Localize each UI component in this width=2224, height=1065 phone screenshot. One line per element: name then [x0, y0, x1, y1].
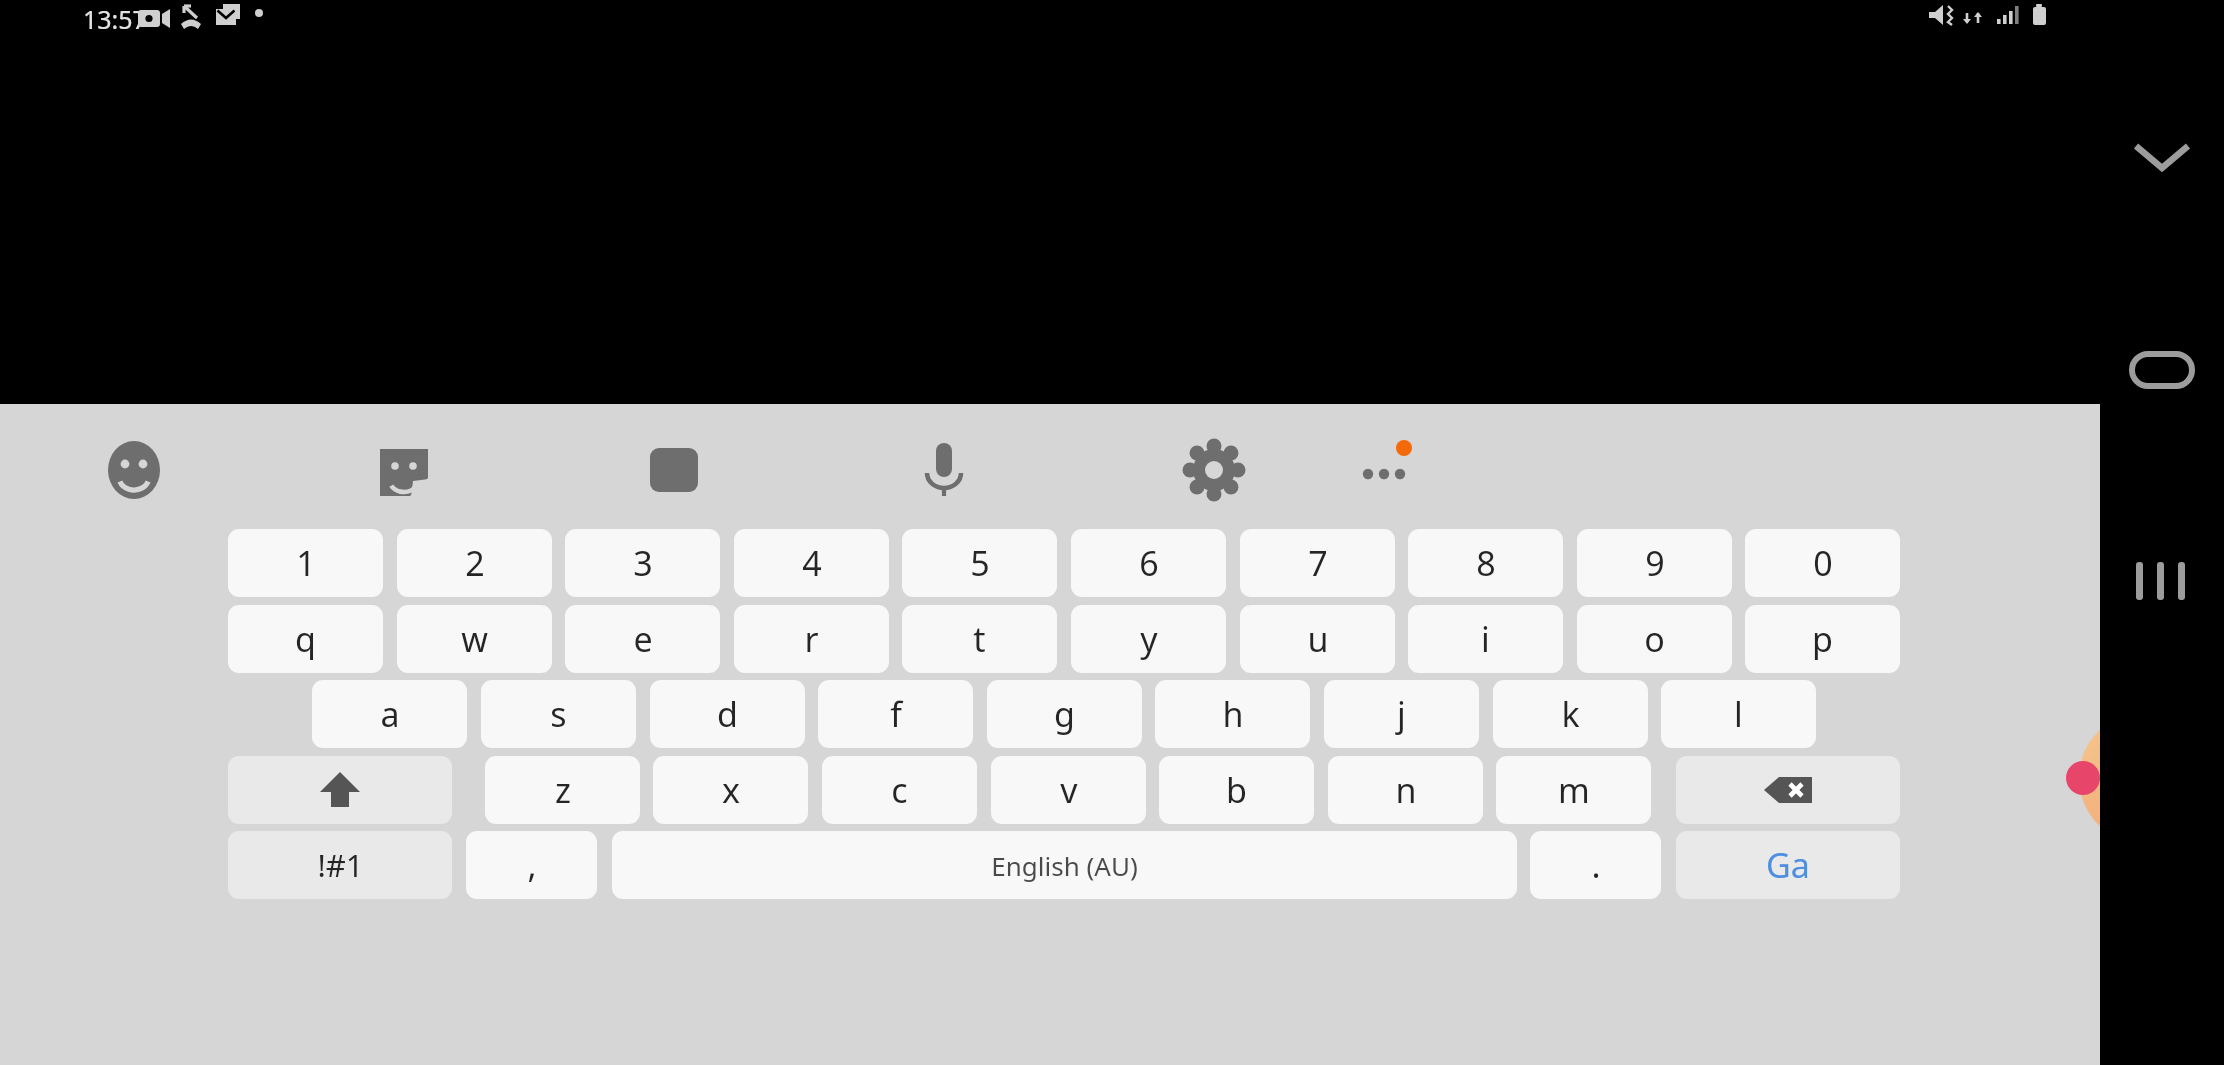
button[interactable]: GIF — [640, 436, 708, 504]
button[interactable]: s — [481, 680, 636, 748]
staticText: 1 — [296, 540, 316, 586]
button[interactable]: u — [1240, 605, 1395, 673]
staticText: 3 — [633, 540, 653, 586]
button[interactable]: 6 — [1071, 529, 1226, 597]
button[interactable]: q — [228, 605, 383, 673]
staticText: English (AU) — [991, 848, 1138, 883]
staticText: , — [527, 842, 537, 888]
button[interactable]: p — [1745, 605, 1900, 673]
button[interactable]: 0 — [1745, 529, 1900, 597]
staticText: r — [804, 616, 819, 662]
staticText: m — [1558, 767, 1590, 813]
button[interactable]: Keyboard settings — [1180, 436, 1248, 504]
button[interactable]: 9 — [1577, 529, 1732, 597]
staticText: z — [555, 767, 571, 813]
button[interactable]: 2 — [397, 529, 552, 597]
button[interactable]: English (AU) — [612, 831, 1517, 899]
staticText: 9 — [1645, 540, 1665, 586]
button[interactable]: . — [1530, 831, 1661, 899]
button[interactable]: z — [485, 756, 640, 824]
staticText: y — [1140, 616, 1158, 662]
button[interactable]: Backspace — [1676, 756, 1900, 824]
button[interactable]: v — [991, 756, 1146, 824]
button[interactable]: 7 — [1240, 529, 1395, 597]
button[interactable]: Emoji — [100, 436, 168, 504]
button[interactable]: m — [1496, 756, 1651, 824]
button[interactable]: Recent apps — [2122, 540, 2202, 620]
staticText: 6 — [1139, 540, 1159, 586]
button[interactable]: l — [1661, 680, 1816, 748]
button[interactable]: Voice input — [910, 436, 978, 504]
button[interactable]: b — [1159, 756, 1314, 824]
button[interactable]: h — [1155, 680, 1310, 748]
button[interactable]: Stickers — [370, 436, 438, 504]
button[interactable]: a — [312, 680, 467, 748]
staticText: 7 — [1308, 540, 1328, 586]
button[interactable]: Hide keyboard — [2122, 118, 2202, 198]
staticText: c — [891, 767, 908, 813]
button[interactable]: y — [1071, 605, 1226, 673]
staticText: a — [380, 691, 400, 737]
staticText: t — [973, 616, 986, 662]
staticText: w — [461, 616, 488, 662]
button[interactable]: , — [466, 831, 597, 899]
button[interactable]: i — [1408, 605, 1563, 673]
staticText: p — [1812, 616, 1833, 662]
staticText: k — [1561, 691, 1580, 737]
button[interactable]: More options — [1350, 436, 1418, 504]
button[interactable]: 1 — [228, 529, 383, 597]
staticText: b — [1226, 767, 1247, 813]
staticText: 2 — [465, 540, 485, 586]
button[interactable]: c — [822, 756, 977, 824]
staticText: q — [295, 616, 316, 662]
staticText: j — [1397, 691, 1406, 737]
staticText: d — [717, 691, 738, 737]
staticText: o — [1644, 616, 1665, 662]
staticText: 5 — [970, 540, 990, 586]
button[interactable]: 5 — [902, 529, 1057, 597]
staticText: 4 — [802, 540, 822, 586]
button[interactable]: j — [1324, 680, 1479, 748]
staticText: x — [722, 767, 740, 813]
staticText: h — [1222, 691, 1244, 737]
button[interactable]: e — [565, 605, 720, 673]
button[interactable]: 8 — [1408, 529, 1563, 597]
button[interactable]: Home — [2122, 330, 2202, 410]
button[interactable]: d — [650, 680, 805, 748]
button[interactable]: w — [397, 605, 552, 673]
button[interactable]: f — [818, 680, 973, 748]
staticText: g — [1054, 691, 1075, 737]
button[interactable]: !#1 — [228, 831, 452, 899]
staticText: u — [1307, 616, 1329, 662]
button[interactable]: k — [1493, 680, 1648, 748]
staticText: Ga — [1766, 842, 1810, 888]
button[interactable]: Shift — [228, 756, 452, 824]
staticText: 0 — [1813, 540, 1833, 586]
staticText: !#1 — [317, 844, 364, 886]
button[interactable]: t — [902, 605, 1057, 673]
staticText: 13:57 — [83, 2, 147, 36]
button[interactable]: o — [1577, 605, 1732, 673]
staticText: s — [550, 691, 567, 737]
button[interactable]: 3 — [565, 529, 720, 597]
staticText: f — [890, 691, 902, 737]
button[interactable]: g — [987, 680, 1142, 748]
staticText: i — [1481, 616, 1490, 662]
button[interactable]: n — [1328, 756, 1483, 824]
button[interactable]: x — [653, 756, 808, 824]
button[interactable]: 4 — [734, 529, 889, 597]
button[interactable]: Ga — [1676, 831, 1900, 899]
button[interactable]: r — [734, 605, 889, 673]
staticText: l — [1734, 691, 1743, 737]
staticText: . — [1591, 842, 1601, 888]
staticText: e — [633, 616, 653, 662]
staticText: v — [1060, 767, 1078, 813]
staticText: 8 — [1476, 540, 1496, 586]
staticText: n — [1395, 767, 1417, 813]
